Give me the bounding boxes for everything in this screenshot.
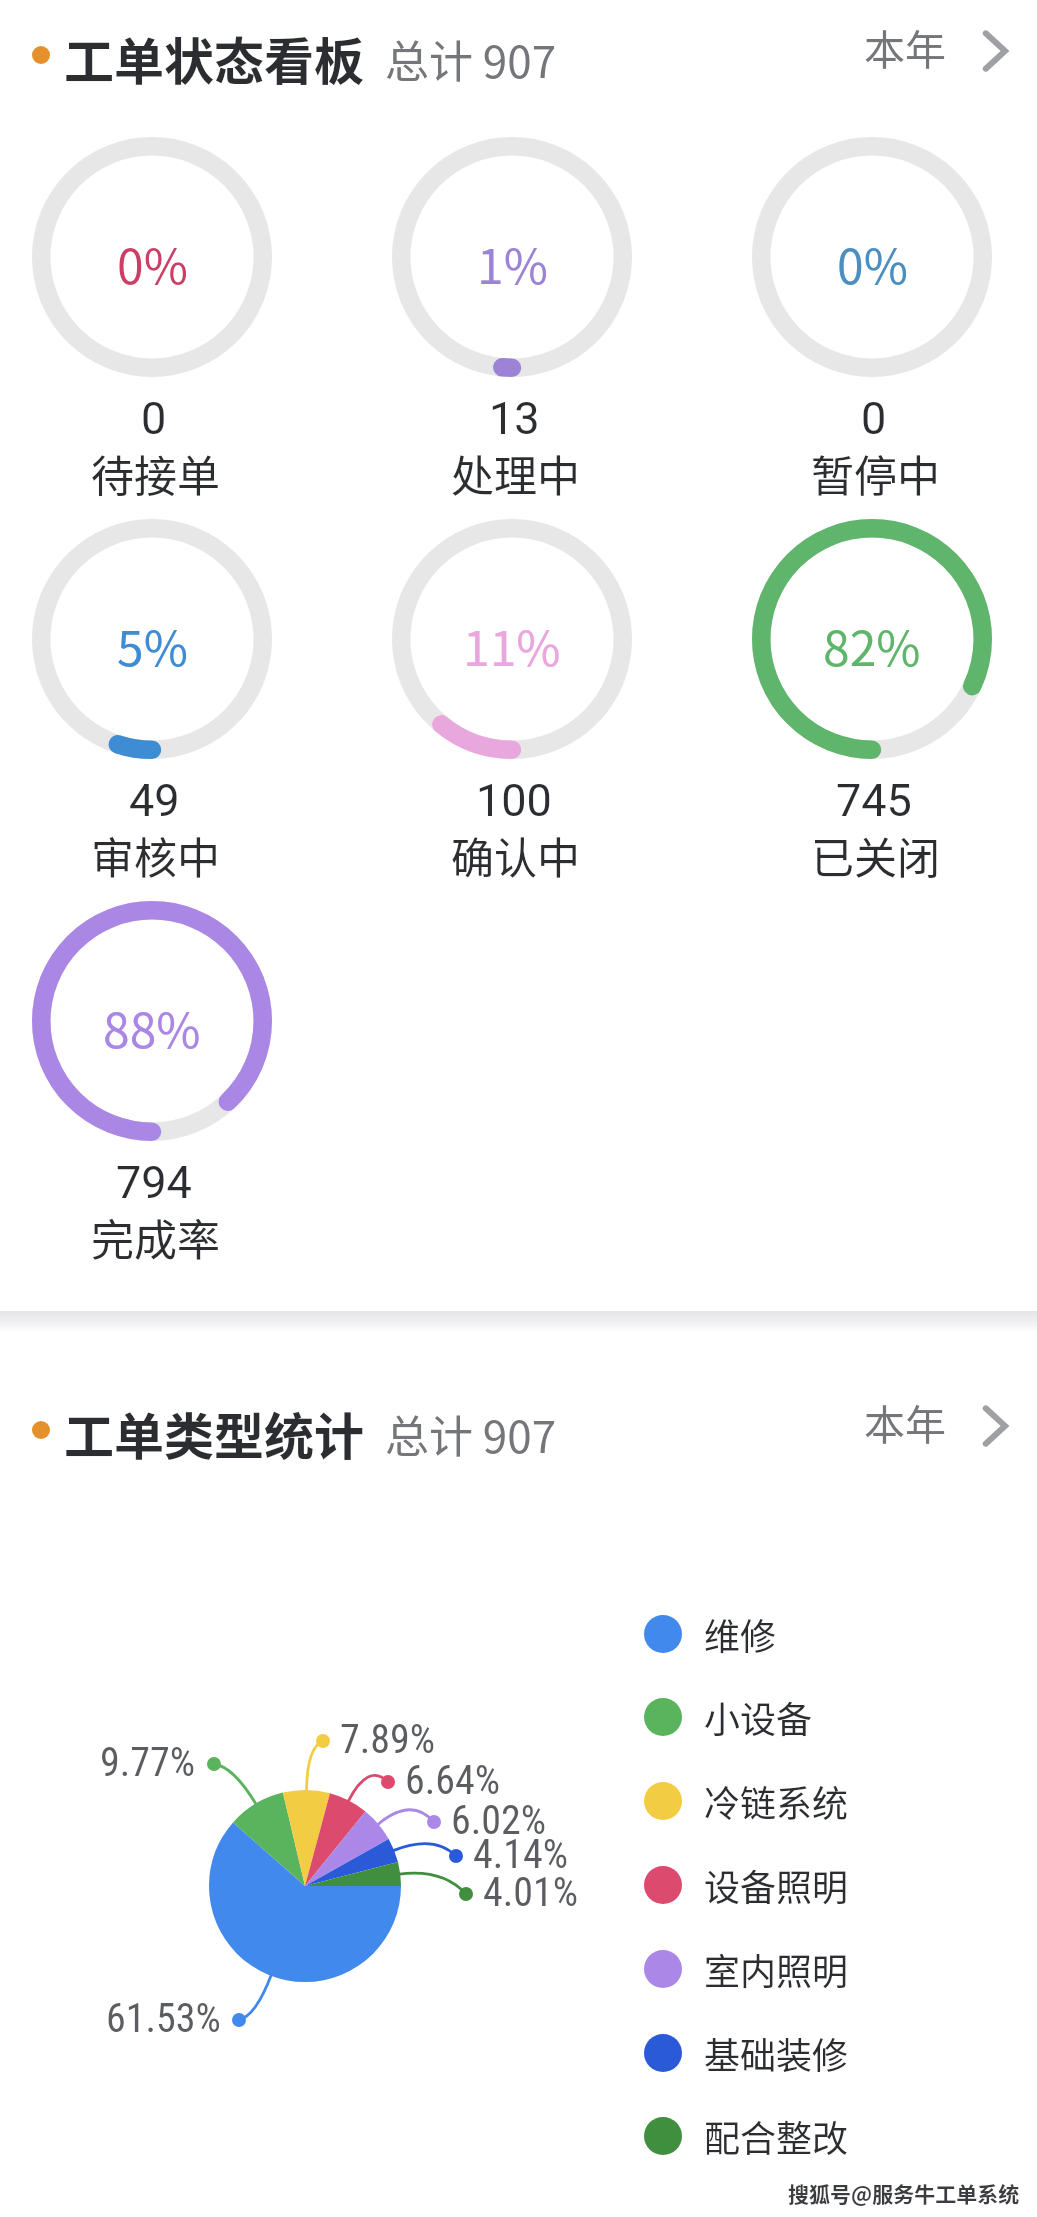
button[interactable] — [636, 2098, 976, 2174]
button[interactable] — [636, 1931, 976, 2007]
staticText: 88% — [103, 992, 201, 1062]
staticText: 工单类型统计 — [64, 1397, 364, 1469]
staticText: 82% — [823, 610, 921, 680]
staticText: 794 — [116, 1156, 192, 1209]
button[interactable] — [0, 127, 324, 501]
staticText: 7.89% — [340, 1716, 436, 1763]
staticText: 室内照明 — [704, 1943, 849, 1995]
button[interactable] — [0, 509, 324, 883]
staticText: 总计 907 — [385, 27, 557, 91]
button[interactable] — [636, 1847, 976, 1923]
staticText: 本年 — [864, 1392, 946, 1451]
staticText: 5% — [117, 610, 188, 680]
staticText: 维修 — [704, 1608, 777, 1660]
staticText: 0 — [861, 392, 887, 445]
staticText: 1% — [477, 228, 548, 298]
staticText: 100 — [476, 774, 552, 827]
staticText: 0 — [141, 392, 167, 445]
staticText: 49 — [129, 774, 180, 827]
button[interactable] — [636, 1763, 976, 1839]
staticText: 完成率 — [91, 1206, 220, 1268]
staticText: 待接单 — [91, 442, 220, 504]
staticText: 本年 — [864, 17, 946, 76]
button[interactable] — [700, 127, 1037, 501]
button[interactable] — [340, 509, 684, 883]
staticText: 搜狐号@服务牛工单系统 — [788, 2178, 1020, 2208]
button[interactable] — [0, 1379, 1037, 1491]
staticText: 工单状态看板 — [64, 22, 364, 94]
button[interactable] — [0, 4, 1037, 116]
staticText: 总计 907 — [385, 1402, 557, 1466]
button[interactable]: 查看更多 — [966, 1400, 1018, 1452]
staticText: 745 — [836, 774, 912, 827]
staticText: 13 — [489, 392, 540, 445]
staticText: 9.77% — [100, 1739, 196, 1786]
button[interactable]: 查看更多 — [966, 25, 1018, 77]
staticText: 暂停中 — [811, 442, 940, 504]
staticText: 0% — [837, 228, 908, 298]
staticText: 小设备 — [704, 1691, 813, 1743]
staticText: 6.02% — [451, 1797, 547, 1844]
staticText: 0% — [117, 228, 188, 298]
staticText: 4.01% — [483, 1869, 579, 1916]
staticText: 61.53% — [106, 1995, 221, 2042]
staticText: 已关闭 — [811, 824, 940, 886]
staticText: 配合整改 — [704, 2110, 849, 2162]
staticText: 4.14% — [473, 1831, 569, 1878]
staticText: 基础装修 — [704, 2027, 849, 2079]
staticText: 设备照明 — [704, 1859, 849, 1911]
staticText: 确认中 — [451, 824, 580, 886]
staticText: 处理中 — [451, 442, 580, 504]
button[interactable] — [340, 127, 684, 501]
staticText: 6.64% — [405, 1757, 501, 1804]
button[interactable] — [636, 1596, 976, 1672]
button[interactable] — [636, 2015, 976, 2091]
button[interactable] — [700, 509, 1037, 883]
button[interactable] — [636, 1679, 976, 1755]
staticText: 11% — [463, 610, 561, 680]
staticText: 冷链系统 — [704, 1775, 849, 1827]
staticText: 审核中 — [91, 824, 220, 886]
button[interactable] — [0, 891, 324, 1265]
